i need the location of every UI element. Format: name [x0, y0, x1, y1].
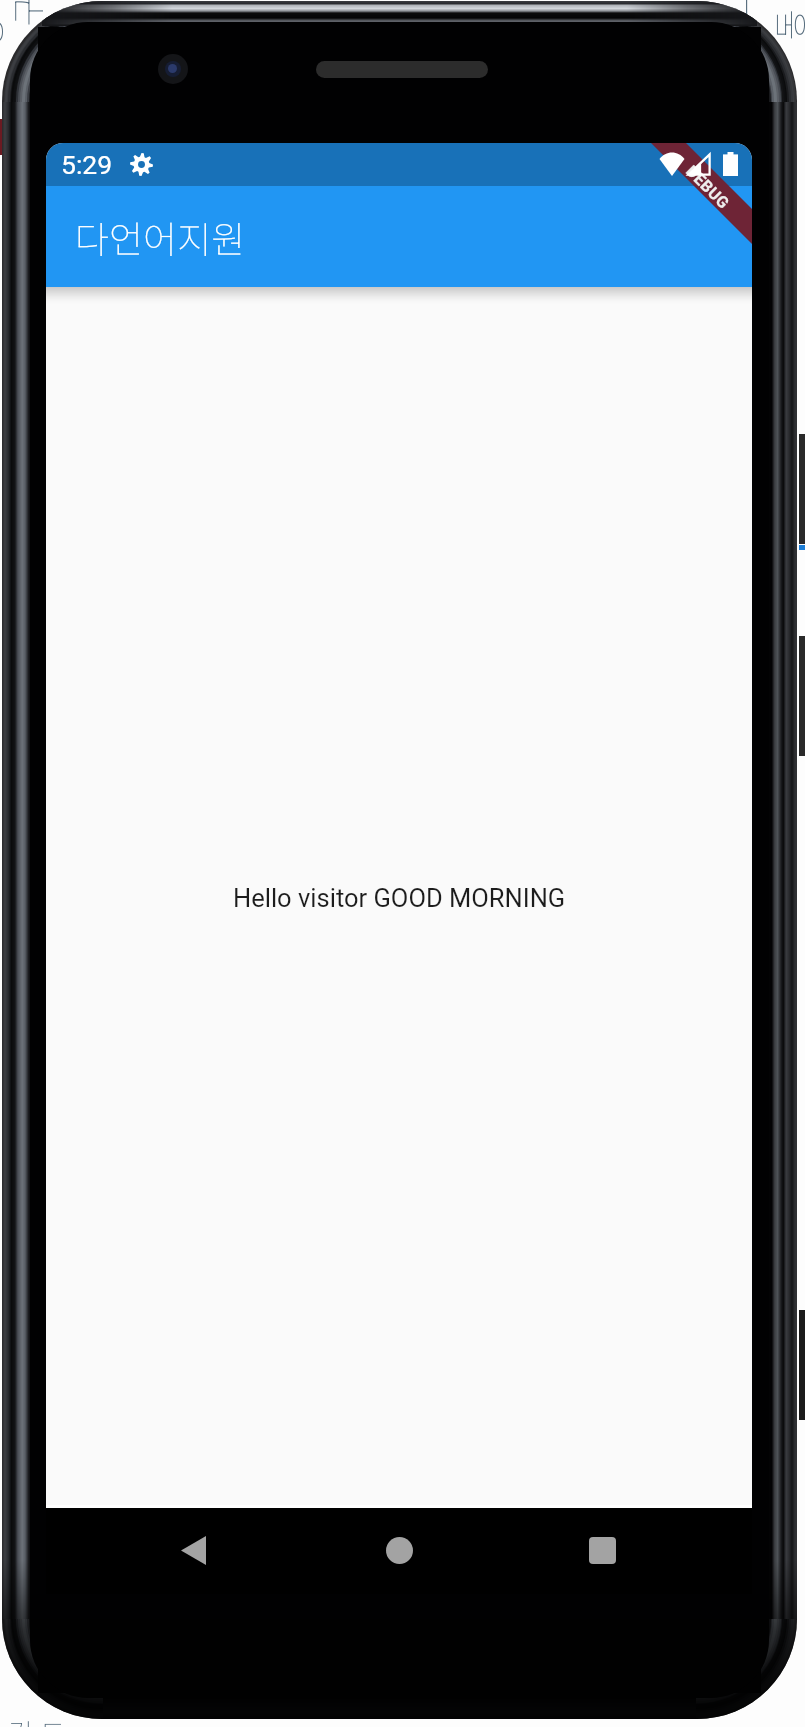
- staticText: 一: [720, 0, 769, 27]
- staticText: 5:29: [61, 149, 113, 180]
- button[interactable]: Recent apps: [563, 1508, 641, 1594]
- button[interactable]: Home: [360, 1508, 438, 1594]
- staticText: 구: [1, 0, 50, 26]
- staticText: 영: [0, 16, 10, 48]
- staticText: DEBUG: [682, 162, 734, 213]
- staticText: 각 드: [8, 1712, 66, 1727]
- staticText: 동: [763, 8, 805, 40]
- staticText: Hello visitor GOOD MORNING: [233, 883, 566, 913]
- button[interactable]: Back: [154, 1508, 232, 1594]
- button[interactable]: Settings: [130, 153, 153, 176]
- staticText: 다언어지원: [75, 210, 246, 264]
